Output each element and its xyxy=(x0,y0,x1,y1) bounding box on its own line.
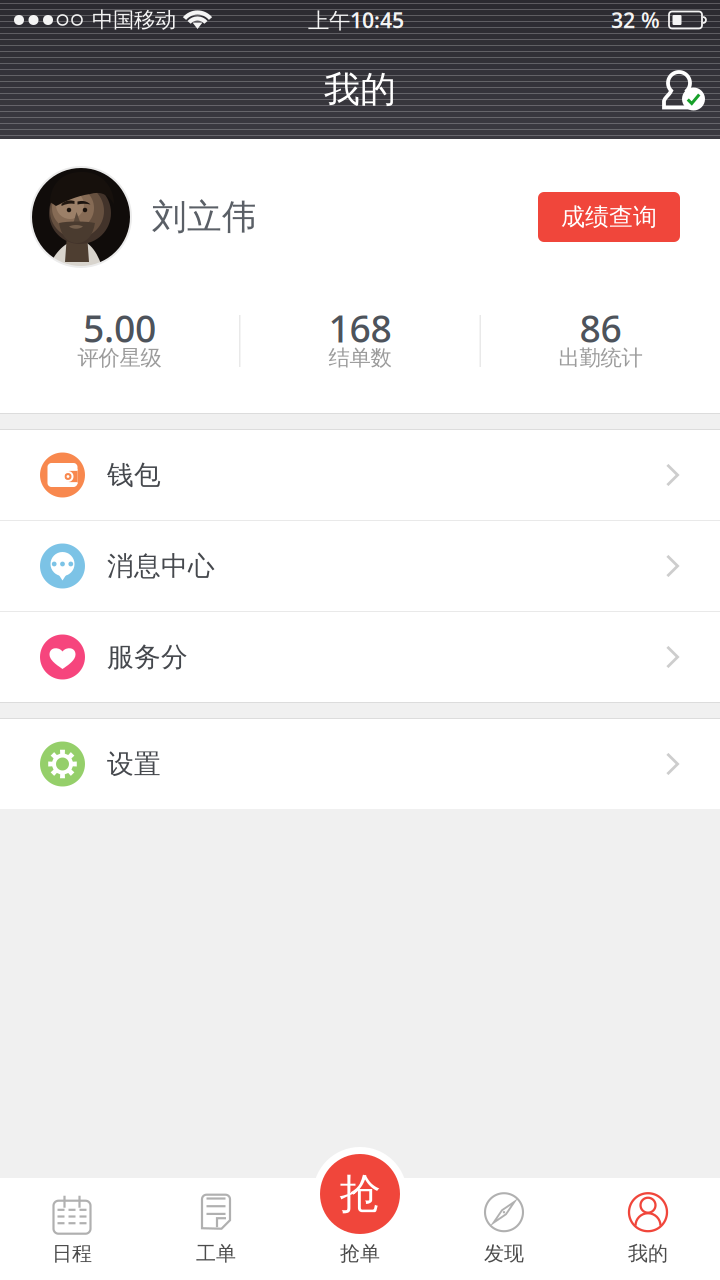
button[interactable]: 抢 xyxy=(313,1147,407,1241)
staticText: 抢 xyxy=(339,1169,380,1219)
staticText: 168 xyxy=(328,303,391,353)
button[interactable]: 消息中心 xyxy=(0,521,720,611)
button[interactable]: 发现 xyxy=(432,1178,576,1280)
staticText: 评价星级 xyxy=(77,345,161,371)
staticText: 我的 xyxy=(324,67,396,112)
button[interactable]: 抢单 xyxy=(288,1178,432,1280)
button[interactable]: 我的 xyxy=(576,1178,720,1280)
button[interactable]: Account verified xyxy=(638,40,720,139)
staticText: 成绩查询 xyxy=(561,202,657,232)
button[interactable]: 服务分 xyxy=(0,612,720,702)
staticText: 上午10:45 xyxy=(308,6,404,34)
staticText: 32 % xyxy=(611,6,660,34)
button[interactable]: 钱包 xyxy=(0,430,720,520)
staticText: 结单数 xyxy=(328,345,391,371)
staticText: 服务分 xyxy=(107,641,188,673)
button[interactable]: 工单 xyxy=(144,1178,288,1280)
staticText: 消息中心 xyxy=(107,550,215,582)
staticText: 抢单 xyxy=(340,1241,380,1266)
staticText: 出勤统计 xyxy=(558,345,642,371)
button[interactable]: 设置 xyxy=(0,719,720,809)
staticText: 86 xyxy=(579,303,621,353)
staticText: 工单 xyxy=(196,1241,236,1266)
staticText: 刘立伟 xyxy=(152,196,257,238)
staticText: 5.00 xyxy=(83,303,156,353)
button[interactable]: 日程 xyxy=(0,1178,144,1280)
staticText: 我的 xyxy=(628,1241,668,1266)
staticText: 钱包 xyxy=(107,459,161,491)
staticText: 设置 xyxy=(107,748,161,780)
button[interactable]: 成绩查询 xyxy=(538,192,680,242)
staticText: 日程 xyxy=(52,1241,92,1266)
staticText: 发现 xyxy=(484,1241,524,1266)
staticText: 中国移动 xyxy=(92,7,176,33)
